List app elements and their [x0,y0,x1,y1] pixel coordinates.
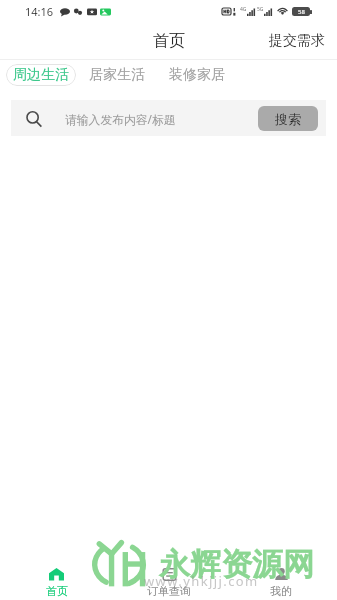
button[interactable]: 装修家居 [158,62,236,88]
staticText: 58 [298,8,305,16]
staticText: 5G [257,6,264,13]
staticText: 永辉资源网 [159,545,314,584]
button[interactable]: 我的 [225,550,337,600]
staticText: 装修家居 [169,66,225,84]
staticText: 居家生活 [89,66,145,84]
staticText: 提交需求 [269,32,325,50]
staticText: 14:16 [25,4,54,19]
button[interactable]: 搜索 [258,106,318,131]
staticText: 4G [240,6,247,13]
staticText: 订单查询 [147,584,191,598]
button[interactable]: 提交需求 [257,23,337,59]
staticText: www.yhkjjj.com [144,572,259,590]
staticText: 周边生活 [13,66,69,84]
staticText: 我的 [270,584,292,598]
button[interactable]: 首页 [0,550,113,600]
staticText: 首页 [153,31,185,51]
button[interactable]: 周边生活 [6,64,76,86]
staticText: 搜索 [275,111,301,127]
staticText: 请输入发布内容/标题 [65,111,176,127]
button[interactable]: 订单查询 [113,550,225,600]
staticText: 首页 [46,584,68,598]
other: Search [23,109,43,129]
button[interactable]: 居家生活 [76,62,158,88]
